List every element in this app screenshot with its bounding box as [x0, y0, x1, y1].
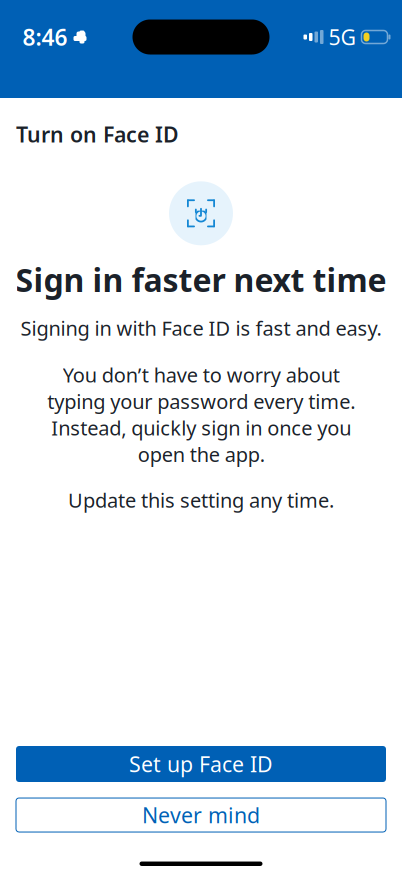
staticText: Signing in with Face ID is fast and easy…: [20, 315, 381, 341]
staticText: Turn on Face ID: [16, 120, 179, 148]
button[interactable]: Set up Face ID: [16, 746, 386, 782]
staticText: 8:46: [22, 22, 67, 52]
staticText: Sign in faster next time: [15, 258, 386, 301]
staticText: You don’t have to worry about typing you…: [47, 361, 355, 468]
staticText: Update this setting any time.: [68, 487, 334, 513]
staticText: 5G: [328, 23, 356, 51]
staticText: Set up Face ID: [129, 750, 273, 778]
staticText: Never mind: [142, 801, 260, 829]
button[interactable]: Never mind: [16, 798, 386, 832]
